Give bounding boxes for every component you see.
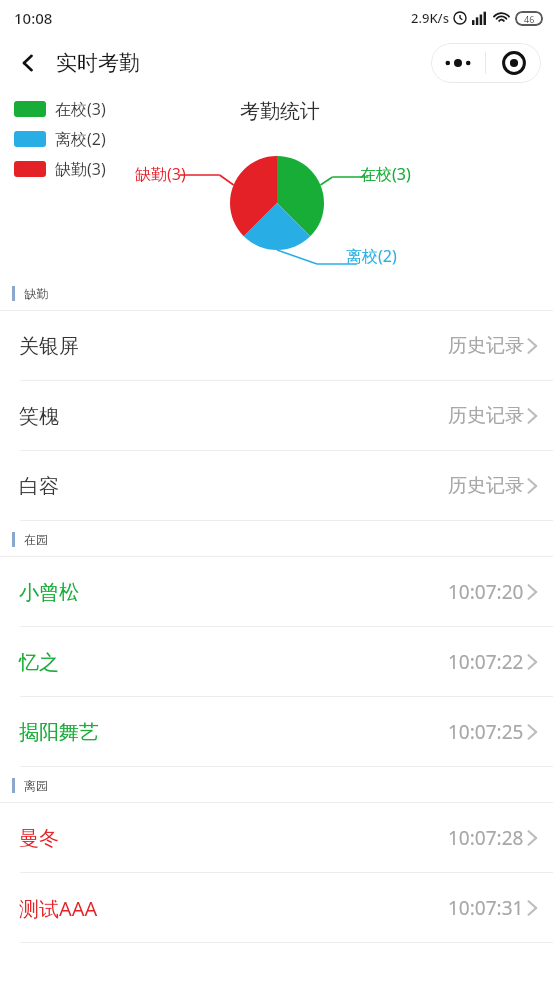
staticText: 离园 — [24, 778, 48, 793]
staticText: 10:07:28 — [448, 825, 524, 851]
button[interactable]: 忆之 — [0, 627, 553, 697]
button[interactable]: Record — [486, 43, 541, 83]
staticText: 曼冬 — [19, 826, 59, 851]
staticText: 揭阳舞艺 — [19, 720, 99, 745]
staticText: 测试AAA — [19, 895, 98, 922]
button[interactable]: 测试AAA — [0, 873, 553, 943]
staticText: 10:07:31 — [448, 895, 524, 921]
staticText: 离校(2) — [346, 245, 397, 267]
staticText: 实时考勤 — [56, 50, 140, 76]
button[interactable]: 笑槐 — [0, 381, 553, 451]
staticText: 在校(3) — [360, 163, 411, 185]
button[interactable]: 曼冬 — [0, 803, 553, 873]
staticText: 10:07:25 — [448, 719, 524, 745]
staticText: 缺勤 — [24, 286, 48, 301]
staticText: 缺勤(3) — [135, 163, 186, 185]
button[interactable]: 小曾松 — [0, 557, 553, 627]
staticText: 历史记录 — [448, 474, 524, 498]
staticText: 考勤统计 — [240, 99, 320, 124]
staticText: 46 — [524, 13, 535, 25]
staticText: 笑槐 — [19, 404, 59, 429]
staticText: 离校(2) — [55, 128, 106, 150]
staticText: 白容 — [19, 474, 59, 499]
button[interactable]: 揭阳舞艺 — [0, 697, 553, 767]
staticText: 10:07:22 — [448, 649, 524, 675]
button[interactable]: Back — [6, 41, 50, 85]
staticText: 10:07:20 — [448, 579, 524, 605]
button[interactable]: 关银屏 — [0, 311, 553, 381]
staticText: 2.9K/s — [411, 9, 449, 27]
staticText: 历史记录 — [448, 334, 524, 358]
staticText: 小曾松 — [19, 580, 79, 605]
staticText: 在校(3) — [55, 98, 106, 120]
button[interactable]: More options — [431, 43, 485, 83]
staticText: 10:08 — [14, 8, 53, 28]
staticText: 在园 — [24, 532, 48, 547]
staticText: 关银屏 — [19, 334, 79, 359]
staticText: 历史记录 — [448, 404, 524, 428]
staticText: 忆之 — [19, 650, 59, 675]
staticText: 缺勤(3) — [55, 158, 106, 180]
button[interactable]: 白容 — [0, 451, 553, 521]
